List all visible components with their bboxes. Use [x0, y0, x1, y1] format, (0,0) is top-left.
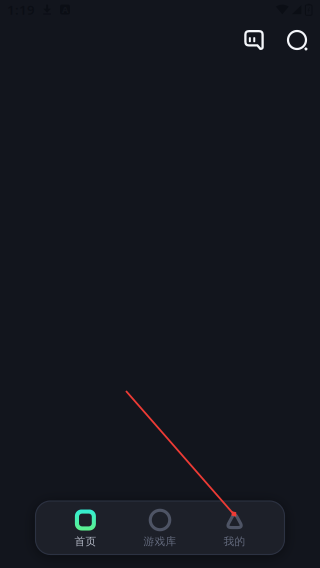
staticText: 首页 — [74, 535, 96, 548]
button[interactable]: Search — [278, 20, 316, 60]
button[interactable]: Messages — [235, 20, 273, 60]
button[interactable]: 游戏库 — [123, 501, 197, 554]
button[interactable]: 我的 — [197, 501, 272, 554]
staticText: 游戏库 — [143, 535, 176, 548]
staticText: A — [62, 3, 68, 16]
staticText: 我的 — [224, 535, 246, 548]
button[interactable]: 首页 — [48, 501, 123, 554]
